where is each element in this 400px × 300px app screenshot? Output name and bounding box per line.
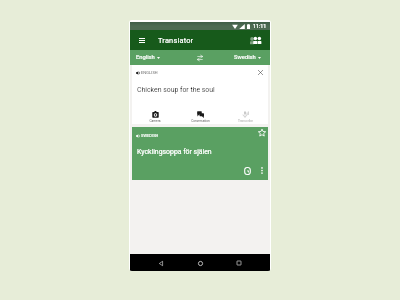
button[interactable]: Transcribe	[223, 111, 268, 124]
button[interactable]: Camera	[132, 111, 178, 124]
staticText: Swedish	[234, 54, 256, 61]
button[interactable]: Copy translation	[242, 165, 253, 176]
staticText: Chicken soup for the soul	[137, 86, 215, 94]
button[interactable]: More options	[256, 165, 267, 176]
button[interactable]: Clear text	[255, 67, 266, 78]
staticText: Transcribe	[238, 119, 253, 123]
staticText: ENGLISH	[141, 70, 158, 75]
staticText: Camera	[149, 119, 161, 123]
button[interactable]: Conversation	[178, 111, 223, 124]
button[interactable]: English	[130, 50, 165, 65]
button[interactable]: Conversation mode	[249, 33, 263, 47]
staticText: Kycklingsoppa för själen	[137, 148, 212, 156]
staticText: Translator	[158, 36, 194, 45]
button[interactable]: Home	[192, 255, 208, 271]
button[interactable]: Swap languages	[193, 51, 207, 65]
button[interactable]: Save translation to phrasebook	[256, 127, 267, 138]
staticText: SWEDISH	[141, 133, 159, 138]
staticText: Conversation	[191, 119, 210, 123]
button[interactable]: Recent apps	[231, 255, 247, 271]
button[interactable]: Back	[153, 255, 169, 271]
staticText: English	[136, 54, 155, 61]
button[interactable]: Swedish	[229, 50, 270, 65]
button[interactable]: Open navigation menu	[135, 33, 149, 47]
staticText: 11:11	[253, 23, 267, 29]
